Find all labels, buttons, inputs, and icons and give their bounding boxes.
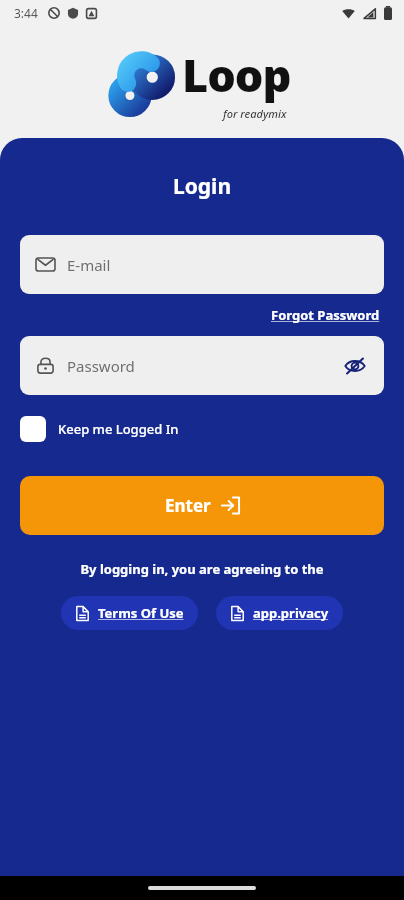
button[interactable]: Password bbox=[20, 336, 384, 395]
staticText: E-mail bbox=[67, 255, 111, 275]
button[interactable]: app.privacy bbox=[216, 596, 343, 630]
staticText: for readymix bbox=[223, 106, 287, 121]
button[interactable]: Terms Of Use bbox=[61, 596, 198, 630]
button[interactable]: Show password bbox=[340, 351, 370, 381]
staticText: Password bbox=[67, 356, 340, 376]
staticText: app.privacy bbox=[253, 604, 329, 622]
staticText: Login bbox=[0, 172, 404, 201]
staticText: Loop bbox=[182, 44, 291, 105]
staticText: Terms Of Use bbox=[98, 604, 184, 622]
button[interactable]: Enter bbox=[20, 476, 384, 535]
staticText: Enter bbox=[165, 494, 211, 517]
staticText: By logging in, you are agreeing to the bbox=[0, 560, 404, 578]
staticText: Keep me Logged In bbox=[58, 420, 179, 438]
button[interactable]: Forgot Password bbox=[267, 303, 384, 327]
staticText: 3:44 bbox=[14, 5, 38, 21]
button[interactable]: E-mail bbox=[20, 235, 384, 294]
button[interactable]: Keep me Logged In bbox=[20, 416, 179, 442]
